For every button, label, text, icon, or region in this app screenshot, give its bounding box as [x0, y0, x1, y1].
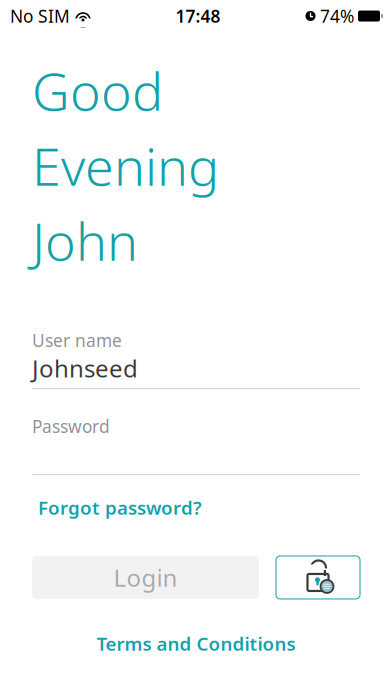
button[interactable]: Login with fingerprint	[276, 556, 360, 599]
staticText: Terms and Conditions	[96, 631, 295, 656]
button[interactable]: Forgot password?	[38, 491, 202, 524]
staticText: 74%	[320, 4, 354, 27]
button[interactable]: Login	[32, 556, 259, 599]
staticText: User name	[32, 329, 122, 352]
staticText: Good Evening John	[32, 56, 219, 275]
staticText: No SIM	[10, 4, 70, 27]
staticText: Login	[113, 561, 177, 593]
staticText: 17:48	[175, 4, 220, 27]
staticText: Forgot password?	[38, 495, 202, 520]
staticText: Password	[32, 415, 110, 438]
staticText: Johnseed	[32, 352, 138, 384]
button[interactable]: Terms and Conditions	[84, 625, 307, 662]
